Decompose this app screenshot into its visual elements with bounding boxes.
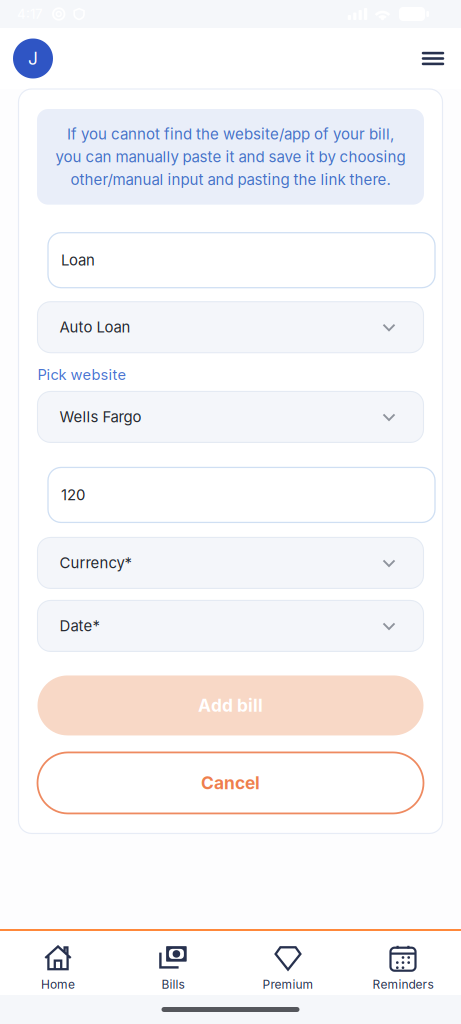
- button[interactable]: Premium: [230, 931, 345, 995]
- staticText: Add bill: [198, 695, 263, 716]
- button[interactable]: Loan: [48, 233, 435, 288]
- staticText: Cancel: [201, 772, 260, 793]
- staticText: Premium: [262, 977, 313, 991]
- staticText: Date*: [59, 617, 99, 635]
- staticText: other/manual input and pasting the link …: [70, 170, 390, 189]
- button[interactable]: 120: [48, 467, 435, 522]
- button[interactable]: Cancel: [37, 752, 423, 813]
- button[interactable]: Add bill: [37, 675, 423, 735]
- staticText: If you cannot find the website/app of yo…: [67, 125, 394, 143]
- button[interactable]: Home: [0, 931, 115, 995]
- button[interactable]: Profile: [9, 34, 57, 82]
- staticText: Currency*: [59, 554, 131, 572]
- button[interactable]: Currency*: [37, 537, 423, 588]
- staticText: Auto Loan: [59, 318, 130, 336]
- staticText: Reminders: [372, 977, 433, 991]
- button[interactable]: Reminders: [345, 931, 460, 995]
- staticText: 120: [61, 486, 85, 504]
- staticText: Loan: [61, 251, 95, 269]
- staticText: J: [28, 48, 38, 69]
- staticText: Pick website: [37, 366, 126, 383]
- button[interactable]: Wells Fargo: [37, 391, 423, 442]
- staticText: Home: [41, 977, 75, 991]
- staticText: Bills: [161, 977, 184, 991]
- staticText: Wells Fargo: [59, 408, 141, 426]
- button[interactable]: Bills: [115, 931, 230, 995]
- button[interactable]: Menu: [411, 36, 455, 80]
- button[interactable]: Auto Loan: [37, 302, 423, 353]
- button[interactable]: Date*: [37, 600, 423, 651]
- staticText: you can manually paste it and save it by…: [55, 148, 405, 166]
